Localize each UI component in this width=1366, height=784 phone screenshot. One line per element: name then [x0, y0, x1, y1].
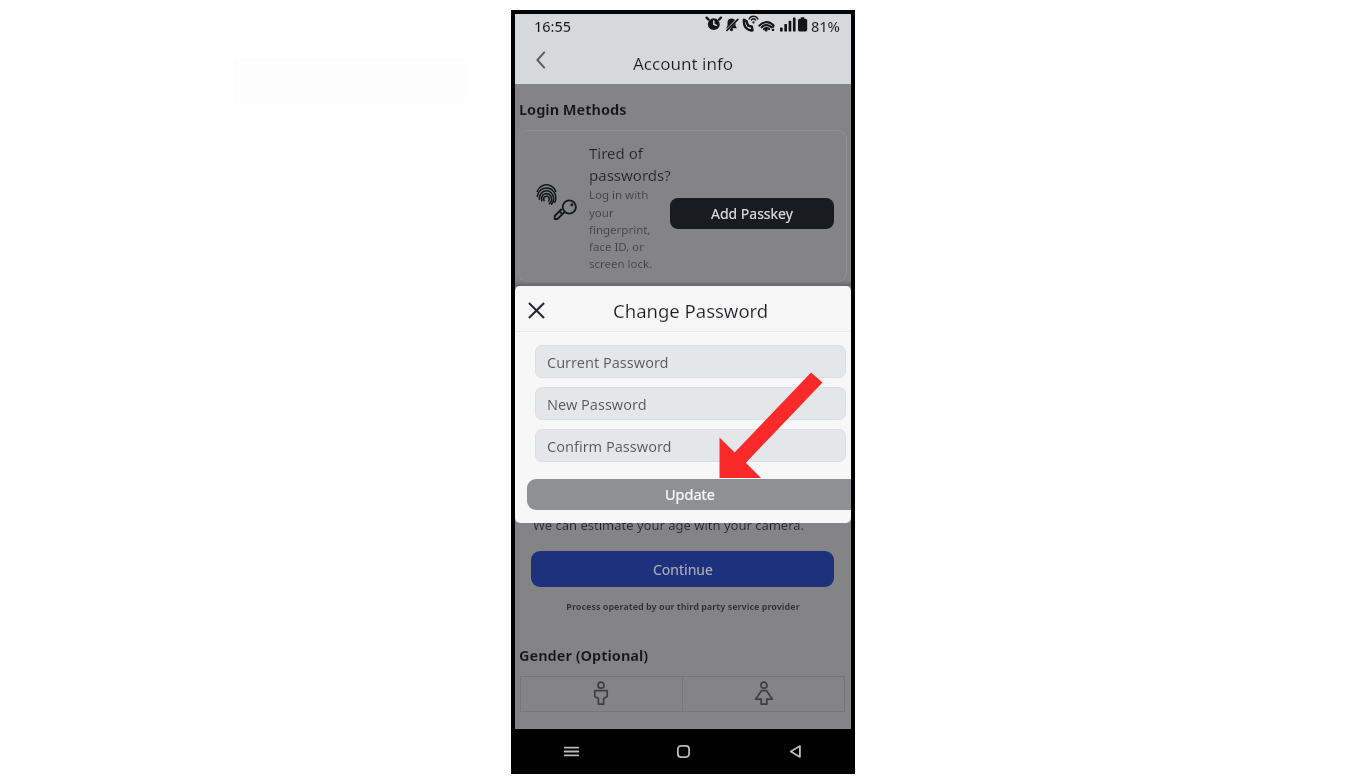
button[interactable]: Home: [627, 729, 739, 770]
staticText: Current Password: [547, 352, 669, 372]
staticText: Account info: [633, 52, 734, 75]
button[interactable]: Continue: [531, 551, 834, 587]
staticText: Tired of passwords?: [589, 143, 671, 186]
button[interactable]: Add Passkey: [670, 198, 834, 229]
button[interactable]: Recents: [515, 729, 627, 770]
staticText: Gender (Optional): [519, 645, 649, 665]
button[interactable]: Confirm Password: [535, 429, 846, 462]
button[interactable]: Update: [527, 479, 851, 510]
staticText: Confirm Password: [547, 436, 672, 456]
staticText: Continue: [653, 560, 713, 579]
button[interactable]: Tired of passwords?: [518, 130, 847, 282]
staticText: 16:55: [534, 16, 572, 36]
button[interactable]: New Password: [535, 387, 846, 420]
button[interactable]: Back: [739, 729, 851, 770]
button[interactable]: Current Password: [535, 345, 846, 378]
staticText: New Password: [547, 394, 647, 414]
button[interactable]: Female: [683, 676, 845, 712]
staticText: Login Methods: [519, 99, 627, 119]
staticText: 81%: [811, 16, 840, 36]
staticText: Log in with your fingerprint, face ID, o…: [589, 187, 653, 271]
staticText: We can estimate your age with your camer…: [533, 516, 805, 534]
staticText: Change Password: [613, 298, 769, 323]
staticText: Update: [665, 484, 715, 504]
staticText: Process operated by our third party serv…: [515, 600, 851, 612]
button[interactable]: Male: [520, 676, 682, 712]
staticText: Add Passkey: [711, 204, 793, 223]
button[interactable]: Back: [525, 44, 557, 76]
button[interactable]: Close: [523, 297, 550, 324]
